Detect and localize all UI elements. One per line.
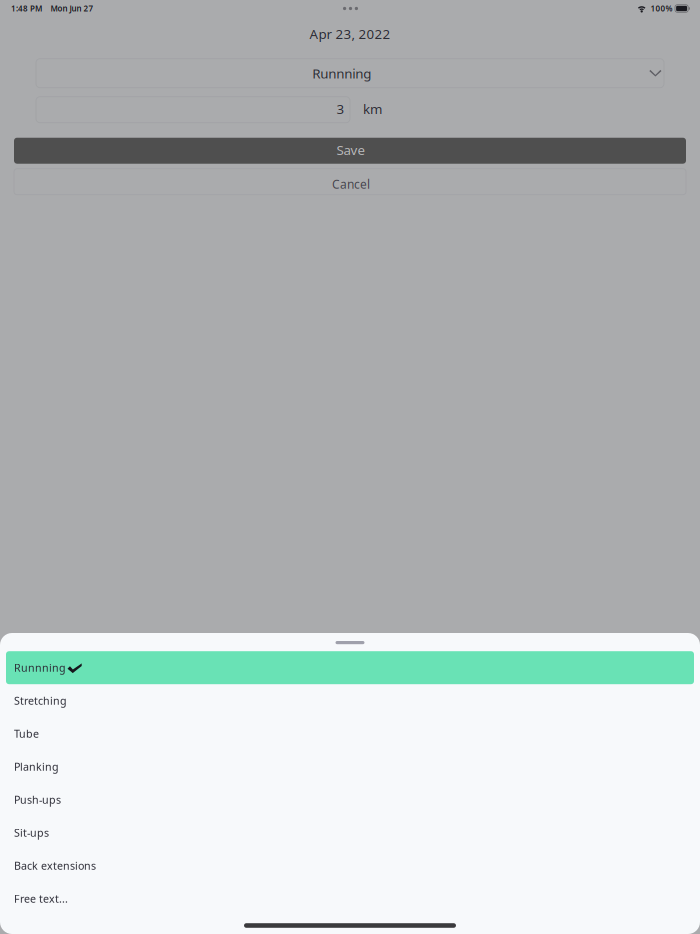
button[interactable]: 3	[36, 97, 350, 123]
button[interactable]: Planking	[6, 750, 694, 783]
staticText: Push-ups	[14, 793, 61, 807]
staticText: Runnning	[312, 64, 371, 82]
button[interactable]: Runnning	[36, 59, 664, 88]
staticText: Tube	[14, 727, 39, 741]
button[interactable]: Stretching	[6, 684, 694, 717]
button[interactable]: Free text...	[6, 882, 694, 915]
staticText: Stretching	[14, 694, 67, 708]
staticText: Runnning	[14, 661, 66, 675]
staticText: 100%	[650, 3, 672, 14]
button[interactable]: Push-ups	[6, 783, 694, 816]
button[interactable]: Tube	[6, 717, 694, 750]
button[interactable]: Save	[14, 138, 686, 164]
button[interactable]: Cancel	[14, 169, 686, 195]
staticText: 1:48 PM	[11, 3, 42, 14]
staticText: 3	[336, 100, 344, 118]
button[interactable]: Runnning	[6, 651, 694, 684]
button[interactable]: Back extensions	[6, 849, 694, 882]
staticText: Mon Jun 27	[50, 3, 93, 14]
staticText: Planking	[14, 760, 59, 774]
staticText: Back extensions	[14, 859, 96, 873]
staticText: Free text...	[14, 892, 68, 906]
staticText: Sit-ups	[14, 826, 49, 840]
staticText: Apr 23, 2022	[309, 25, 390, 43]
staticText: km	[363, 100, 382, 118]
staticText: Save	[336, 141, 365, 159]
staticText: Cancel	[332, 176, 370, 192]
button[interactable]: Sit-ups	[6, 816, 694, 849]
